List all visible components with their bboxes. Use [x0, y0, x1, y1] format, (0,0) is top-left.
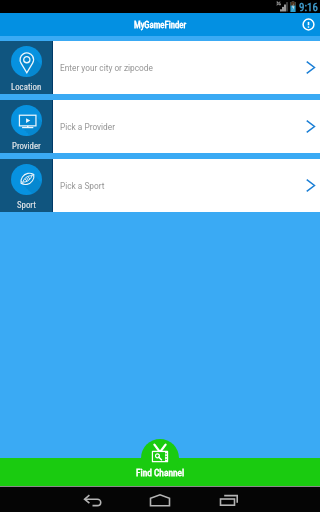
button[interactable]: Home [144, 492, 176, 508]
staticText: 9:16 [299, 1, 318, 14]
staticText: Provider [12, 141, 41, 151]
staticText: Find Channel [136, 467, 185, 478]
button[interactable]: Sport [0, 159, 320, 212]
staticText: Location [11, 82, 42, 92]
button[interactable]: Location [0, 41, 320, 94]
staticText: MyGameFinder [134, 20, 187, 30]
button[interactable]: Info [301, 17, 316, 32]
staticText: Pick a Provider [60, 122, 115, 132]
staticText: Sport [17, 200, 36, 210]
staticText: Enter your city or zipcode [60, 63, 153, 73]
button[interactable]: Back [76, 492, 108, 508]
button[interactable]: Find Channel [141, 439, 179, 477]
button[interactable]: Recent apps [213, 492, 245, 508]
staticText: Pick a Sport [60, 181, 105, 191]
button[interactable]: Provider [0, 100, 320, 153]
